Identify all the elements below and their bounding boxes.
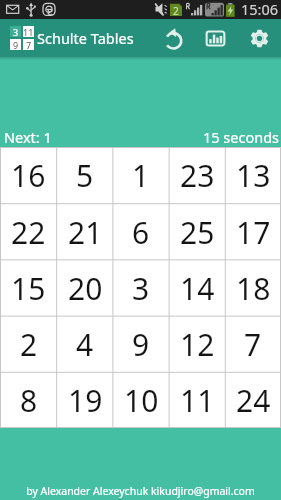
staticText: 2 [20, 324, 38, 365]
staticText: 16 [11, 155, 46, 196]
button[interactable]: 22 [0, 204, 57, 260]
button[interactable]: 6 [113, 204, 169, 260]
staticText: 24 [236, 380, 271, 421]
button[interactable]: 15 [0, 260, 57, 316]
button[interactable]: 11 [169, 372, 225, 428]
staticText: 8 [20, 380, 38, 421]
button[interactable]: 3 [113, 260, 169, 316]
staticText: 7 [26, 39, 32, 50]
staticText: e [47, 4, 53, 18]
staticText: 4 [76, 324, 94, 365]
button[interactable]: 21 [57, 204, 113, 260]
staticText: 5 [76, 155, 94, 196]
button[interactable]: 19 [57, 372, 113, 428]
staticText: 10 [124, 380, 159, 421]
button[interactable]: Statistics [194, 19, 236, 57]
staticText: 1 [132, 155, 150, 196]
button[interactable]: 3 [0, 19, 140, 57]
staticText: 11 [23, 26, 34, 37]
staticText: 14 [180, 268, 215, 309]
button[interactable]: 2 [0, 316, 57, 372]
button[interactable]: Restart [152, 19, 194, 57]
button[interactable]: 4 [57, 316, 113, 372]
button[interactable]: 9 [113, 316, 169, 372]
staticText: 2 [173, 4, 179, 18]
button[interactable]: 7 [225, 316, 281, 372]
button[interactable]: Settings [236, 19, 278, 57]
button[interactable]: 20 [57, 260, 113, 316]
staticText: 20 [68, 268, 103, 309]
staticText: Schulte Tables [37, 28, 134, 48]
button[interactable]: 25 [169, 204, 225, 260]
button[interactable]: 5 [57, 147, 113, 204]
staticText: 17 [236, 212, 271, 253]
button[interactable]: 24 [225, 372, 281, 428]
staticText: 13 [236, 155, 271, 196]
staticText: by Alexander Alexeychuk kikudjiro@gmail.… [26, 484, 255, 498]
button[interactable]: 12 [169, 316, 225, 372]
staticText: 15 [11, 268, 46, 309]
button[interactable]: 17 [225, 204, 281, 260]
staticText: 18 [236, 268, 271, 309]
staticText: 25 [180, 212, 215, 253]
button[interactable]: 14 [169, 260, 225, 316]
staticText: 21 [68, 212, 103, 253]
button[interactable]: 13 [225, 147, 281, 204]
staticText: 3 [13, 26, 19, 37]
button[interactable]: 18 [225, 260, 281, 316]
staticText: 3 [132, 268, 150, 309]
staticText: 9 [13, 39, 19, 50]
staticText: 9 [132, 324, 150, 365]
staticText: 23 [180, 155, 215, 196]
staticText: 6 [132, 212, 150, 253]
button[interactable]: 10 [113, 372, 169, 428]
staticText: 12 [180, 324, 215, 365]
button[interactable]: 16 [0, 147, 57, 204]
staticText: 7 [244, 324, 262, 365]
button[interactable]: 8 [0, 372, 57, 428]
staticText: Next: 1 [4, 127, 52, 147]
staticText: 19 [68, 380, 103, 421]
staticText: 11 [180, 380, 215, 421]
button[interactable]: 1 [113, 147, 169, 204]
staticText: 15:06 [241, 0, 279, 18]
staticText: 22 [11, 212, 46, 253]
staticText: 15 seconds [203, 127, 280, 147]
button[interactable]: 23 [169, 147, 225, 204]
